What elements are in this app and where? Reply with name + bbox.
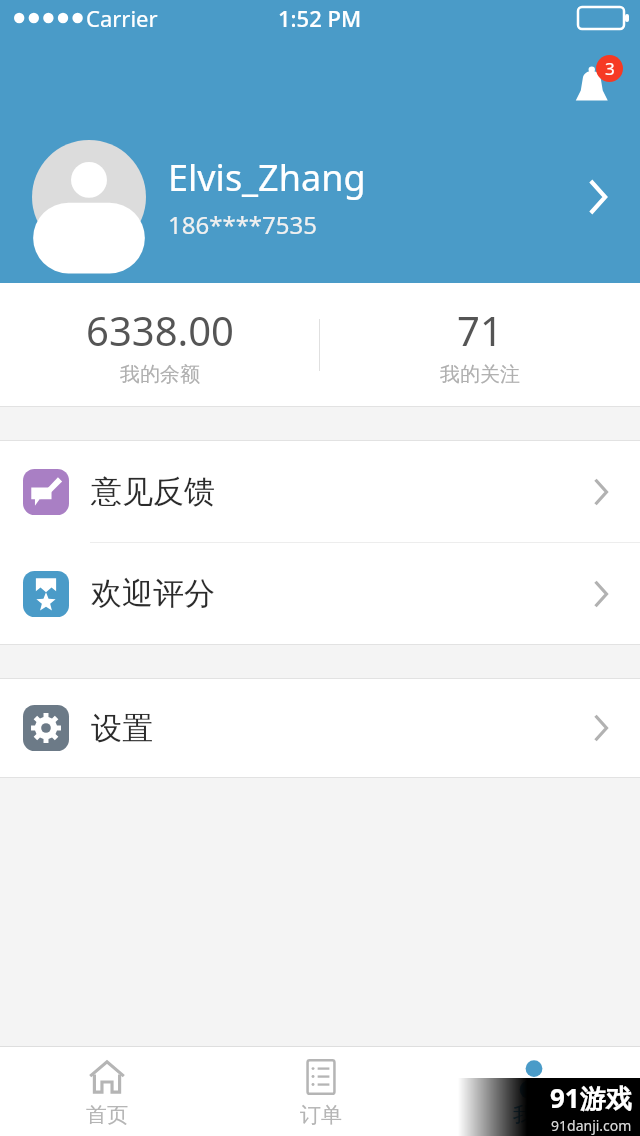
button[interactable]: 6338.00 [0,283,319,407]
staticText: 订单 [300,1102,342,1128]
staticText: 1:52 PM [278,3,362,33]
staticText: 91danji.com [551,1116,632,1135]
staticText: 186****7535 [168,208,317,241]
staticText: 首页 [86,1102,128,1128]
button[interactable]: 我的 [427,1047,640,1136]
staticText: 我的余额 [120,362,200,387]
staticText: 意见反馈 [91,472,215,511]
button[interactable]: 意见反馈 [0,441,640,542]
staticText: 欢迎评分 [91,574,215,613]
button[interactable]: Elvis_Zhang [0,117,640,277]
button[interactable]: 首页 [0,1047,214,1136]
staticText: 我的 [513,1102,555,1128]
button[interactable]: 设置 [0,679,640,777]
staticText: 6338.00 [86,303,234,357]
button[interactable]: 订单 [214,1047,427,1136]
button[interactable]: 欢迎评分 [0,543,640,644]
button[interactable]: Notifications [566,55,622,111]
staticText: Carrier [86,3,158,33]
staticText: Elvis_Zhang [168,153,366,202]
staticText: 我的关注 [440,362,520,387]
staticText: 设置 [91,709,153,748]
staticText: 91游戏 [550,1080,632,1116]
button[interactable]: 71 [320,283,640,407]
staticText: 3 [605,57,615,80]
staticText: 71 [457,303,503,357]
